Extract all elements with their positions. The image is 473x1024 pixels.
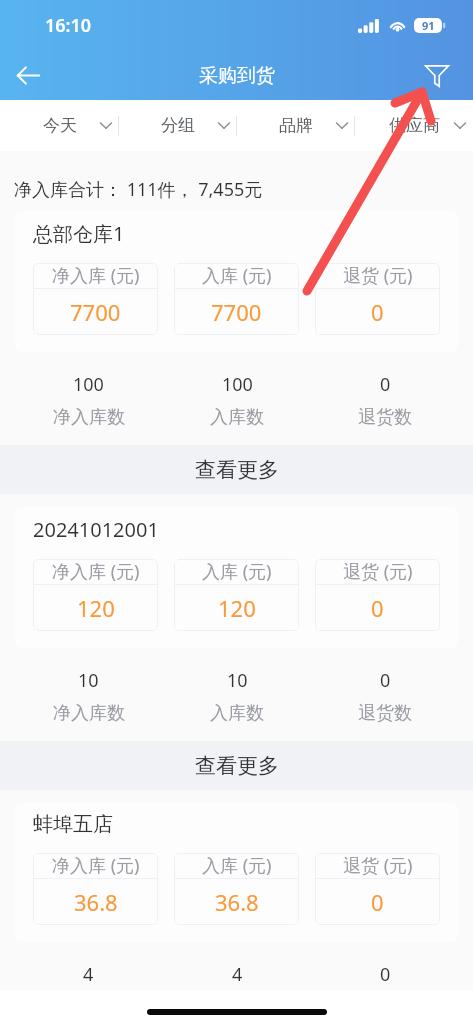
button[interactable]: 品牌 bbox=[237, 100, 355, 151]
staticText: 分组 bbox=[161, 115, 195, 136]
button[interactable]: 供应商 bbox=[355, 100, 473, 151]
staticText: 16:10 bbox=[45, 13, 92, 38]
staticText: 查看更多 bbox=[195, 753, 279, 779]
staticText: 退货 (元) bbox=[343, 263, 413, 288]
staticText: 0 bbox=[371, 593, 384, 623]
staticText: 净入库合计： 111件， 7,455元 bbox=[14, 177, 263, 202]
staticText: 入库数 bbox=[210, 702, 264, 725]
staticText: 120 bbox=[77, 593, 115, 623]
button[interactable]: 20241012001 bbox=[14, 507, 459, 648]
staticText: 0 bbox=[380, 668, 391, 693]
button[interactable]: 查看更多 bbox=[0, 741, 473, 790]
staticText: 净入库 (元) bbox=[52, 853, 140, 878]
staticText: 20241012001 bbox=[33, 516, 159, 543]
staticText: 退货 (元) bbox=[343, 559, 413, 584]
staticText: 今天 bbox=[43, 115, 77, 136]
staticText: 入库数 bbox=[210, 996, 264, 1019]
staticText: 入库 (元) bbox=[202, 853, 272, 878]
staticText: 查看更多 bbox=[195, 457, 279, 483]
staticText: 退货数 bbox=[358, 702, 412, 725]
button[interactable]: Filter bbox=[409, 51, 465, 100]
button[interactable]: 今天 bbox=[0, 100, 119, 151]
staticText: 0 bbox=[380, 372, 391, 397]
staticText: 退货 (元) bbox=[343, 853, 413, 878]
button[interactable]: 总部仓库1 bbox=[14, 211, 459, 352]
staticText: 净入库 (元) bbox=[52, 559, 140, 584]
staticText: 36.8 bbox=[74, 887, 118, 917]
staticText: 0 bbox=[371, 887, 384, 917]
staticText: 4 bbox=[83, 962, 94, 987]
staticText: 120 bbox=[218, 593, 256, 623]
staticText: 100 bbox=[222, 372, 253, 397]
button[interactable]: 分组 bbox=[119, 100, 237, 151]
button[interactable]: 蚌埠五店 bbox=[14, 803, 459, 942]
staticText: 36.8 bbox=[215, 887, 259, 917]
staticText: 蚌埠五店 bbox=[33, 812, 113, 837]
staticText: 净入库数 bbox=[53, 702, 125, 725]
staticText: 100 bbox=[73, 372, 104, 397]
staticText: 10 bbox=[227, 668, 248, 693]
staticText: 退货数 bbox=[358, 406, 412, 429]
staticText: 净入库 (元) bbox=[52, 263, 140, 288]
staticText: 供应商 bbox=[389, 115, 440, 136]
staticText: 10 bbox=[78, 668, 99, 693]
button[interactable]: Back bbox=[0, 51, 56, 100]
staticText: 品牌 bbox=[279, 115, 313, 136]
staticText: 0 bbox=[371, 297, 384, 327]
button[interactable]: 查看更多 bbox=[0, 445, 473, 494]
staticText: 0 bbox=[380, 962, 391, 987]
staticText: 净入库数 bbox=[53, 406, 125, 429]
staticText: 入库 (元) bbox=[202, 263, 272, 288]
staticText: 采购到货 bbox=[199, 64, 275, 88]
staticText: 4 bbox=[232, 962, 243, 987]
staticText: 91 bbox=[422, 18, 435, 33]
staticText: 总部仓库1 bbox=[33, 220, 125, 247]
staticText: 7700 bbox=[211, 297, 262, 327]
staticText: 入库 (元) bbox=[202, 559, 272, 584]
staticText: 7700 bbox=[70, 297, 121, 327]
staticText: 入库数 bbox=[210, 406, 264, 429]
